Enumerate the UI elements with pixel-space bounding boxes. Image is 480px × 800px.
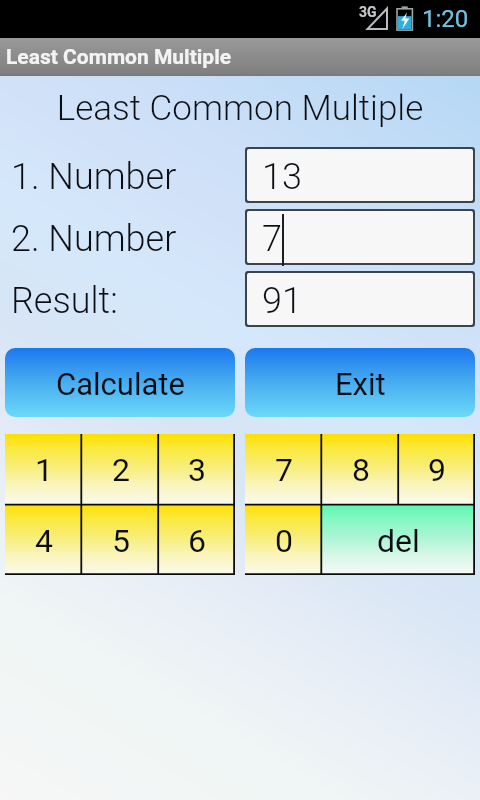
staticText: 8 (352, 451, 370, 489)
button[interactable]: 0 (245, 504, 322, 575)
staticText: 7 (262, 218, 282, 260)
staticText: 6 (188, 522, 206, 560)
staticText: 9 (428, 451, 446, 489)
staticText: 13 (262, 156, 302, 198)
staticText: del (377, 522, 420, 560)
button[interactable]: Exit (245, 348, 475, 417)
staticText: 2. Number (11, 218, 177, 260)
button[interactable]: 4 (5, 504, 82, 575)
staticText: Least Common Multiple (0, 88, 480, 129)
staticText: Calculate (56, 366, 185, 402)
button[interactable]: 1 (5, 434, 82, 504)
button[interactable]: 7 (245, 434, 322, 504)
button[interactable]: 8 (322, 434, 399, 504)
staticText: 91 (262, 280, 302, 322)
button[interactable]: 91 (247, 273, 473, 325)
staticText: 7 (275, 451, 293, 489)
button[interactable]: 13 (247, 149, 473, 201)
staticText: 1:20 (422, 5, 469, 33)
button[interactable]: 3 (159, 434, 235, 504)
staticText: Exit (335, 366, 386, 402)
staticText: 4 (35, 522, 53, 560)
button[interactable]: Calculate (5, 348, 235, 417)
staticText: 3 (188, 451, 206, 489)
button[interactable]: 9 (399, 434, 475, 504)
staticText: 3G (359, 4, 377, 20)
button[interactable]: 5 (82, 504, 159, 575)
button[interactable]: del (322, 504, 475, 575)
staticText: Result: (11, 280, 118, 322)
staticText: 2 (112, 451, 130, 489)
button[interactable]: 2 (82, 434, 159, 504)
staticText: Least Common Multiple (6, 45, 232, 70)
staticText: 1. Number (11, 156, 177, 198)
button[interactable]: 6 (159, 504, 235, 575)
staticText: 1 (35, 451, 53, 489)
staticText: 0 (275, 522, 293, 560)
button[interactable]: 7 (247, 211, 473, 263)
staticText: 5 (112, 522, 130, 560)
